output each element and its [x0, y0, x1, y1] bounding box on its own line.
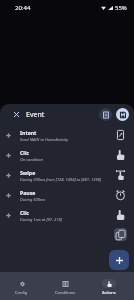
staticText: Clic	[20, 209, 30, 216]
staticText: 55%	[115, 4, 127, 12]
button[interactable]: Intent	[0, 125, 134, 145]
button[interactable]: Clic	[0, 145, 134, 165]
staticText: During 500ms	[20, 197, 46, 202]
staticText: Intent	[20, 129, 37, 136]
button[interactable]: Swipe action	[114, 168, 127, 181]
button[interactable]: Add action	[109, 250, 129, 270]
staticText: Conditions	[55, 290, 76, 295]
button[interactable]: Clic	[0, 205, 134, 225]
staticText: Pause	[20, 189, 36, 196]
button[interactable]: Close	[10, 108, 23, 121]
button[interactable]: Conditions	[43, 272, 87, 300]
staticText: During 300ms from [128, 1494] to [481, 1…	[20, 177, 102, 182]
staticText: During 1ms at [97, 218]	[20, 217, 62, 222]
staticText: Event	[26, 110, 45, 120]
staticText: On condition	[20, 157, 43, 162]
staticText: 20:44	[15, 4, 31, 12]
button[interactable]: Actions	[87, 272, 131, 300]
button[interactable]: Click action 2	[114, 208, 127, 221]
button[interactable]: Config	[0, 272, 43, 300]
button[interactable]: Copy action	[114, 228, 127, 241]
button[interactable]: Save	[116, 108, 129, 121]
button[interactable]: Swipe	[0, 165, 134, 185]
staticText: Swipe	[20, 169, 36, 176]
staticText: Send MAIN to HomeActivity	[20, 137, 69, 142]
button[interactable]: Intent action	[114, 128, 127, 141]
button[interactable]: Notes	[99, 108, 112, 121]
staticText: Config	[15, 290, 28, 295]
staticText: Clic	[20, 149, 30, 156]
staticText: Actions	[102, 290, 116, 295]
button[interactable]: Pause action	[114, 188, 127, 201]
button[interactable]: Click action	[114, 148, 127, 161]
button[interactable]: Pause	[0, 185, 134, 205]
